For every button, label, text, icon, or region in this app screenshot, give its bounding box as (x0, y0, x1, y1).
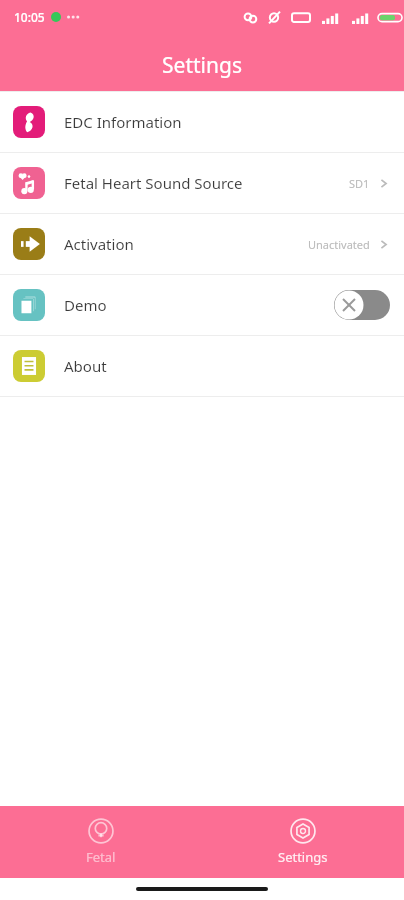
other: Activation icon (13, 228, 45, 260)
button[interactable]: Settings (202, 806, 404, 878)
other: About icon (13, 350, 45, 382)
other: EDC Information icon (13, 106, 45, 138)
staticText: Settings (278, 848, 328, 866)
staticText: EDC Information (64, 112, 182, 132)
button[interactable]: Fetal (0, 806, 202, 878)
staticText: Activation (64, 234, 134, 254)
button[interactable]: About icon (0, 336, 404, 396)
staticText: Unactivated (308, 237, 370, 252)
button[interactable]: EDC Information icon (0, 92, 404, 152)
button[interactable]: Fetal Heart Sound Source icon (0, 153, 404, 213)
staticText: About (64, 356, 107, 376)
button[interactable]: Demo toggle, off (334, 290, 390, 320)
other: Fetal Heart Sound Source icon (13, 167, 45, 199)
other: Demo icon (13, 289, 45, 321)
staticText: Fetal (86, 848, 116, 866)
staticText: Demo (64, 295, 107, 315)
button[interactable]: Demo icon (0, 275, 404, 335)
staticText: Fetal Heart Sound Source (64, 173, 243, 193)
staticText: Settings (162, 51, 242, 80)
staticText: SD1 (349, 176, 370, 191)
staticText: 10:05 (14, 9, 45, 25)
button[interactable]: Activation icon (0, 214, 404, 274)
